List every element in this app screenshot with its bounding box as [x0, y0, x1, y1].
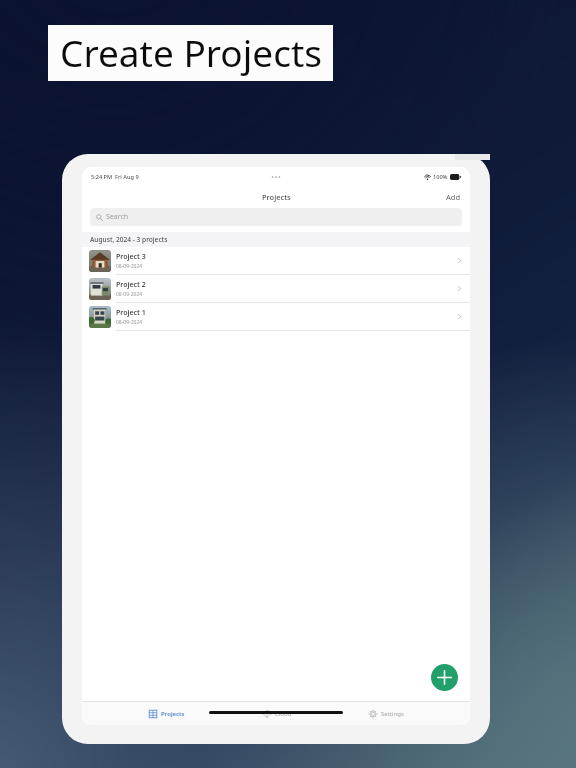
- staticText: Cloud: [275, 710, 292, 718]
- button[interactable]: Project 2: [82, 275, 470, 303]
- button[interactable]: Add project: [431, 664, 458, 691]
- staticText: 100%: [433, 173, 448, 181]
- button[interactable]: Search: [90, 208, 462, 226]
- staticText: 08-09-2024: [116, 263, 143, 270]
- staticText: Settings: [381, 710, 404, 718]
- button[interactable]: Cloud: [252, 706, 302, 722]
- staticText: Project 3: [116, 252, 146, 262]
- staticText: 5:24 PM Fri Aug 9: [91, 173, 139, 181]
- staticText: Add: [446, 192, 461, 202]
- button[interactable]: Projects: [138, 706, 195, 722]
- button[interactable]: Add: [437, 188, 470, 206]
- button[interactable]: Settings: [358, 706, 414, 722]
- staticText: Projects: [161, 710, 185, 718]
- staticText: Project 2: [116, 280, 146, 290]
- staticText: Create Projects: [60, 27, 322, 77]
- staticText: 08-09-2024: [116, 291, 143, 298]
- button[interactable]: Project 1: [82, 303, 470, 331]
- staticText: Search: [106, 212, 129, 222]
- button[interactable]: Project 3: [82, 247, 470, 275]
- staticText: Projects: [262, 192, 291, 202]
- staticText: August, 2024 - 3 projects: [90, 235, 168, 244]
- staticText: 08-09-2024: [116, 319, 143, 326]
- staticText: Project 1: [116, 308, 146, 318]
